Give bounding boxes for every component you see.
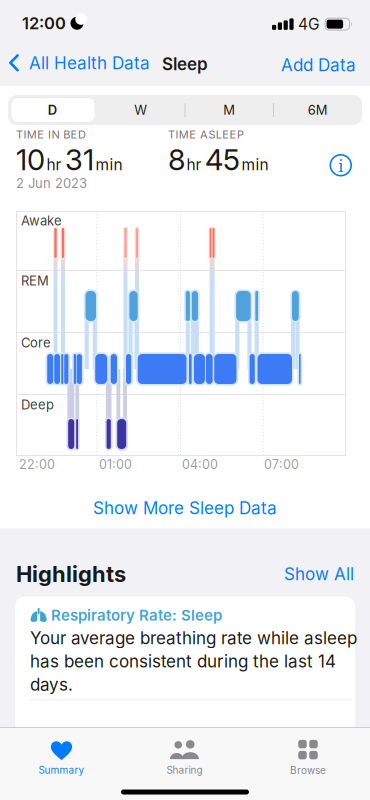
- staticText: All Health Data: [29, 53, 150, 73]
- staticText: min: [95, 155, 122, 174]
- staticText: Sharing: [166, 764, 202, 776]
- staticText: 04:00: [182, 457, 218, 472]
- staticText: 01:00: [99, 457, 132, 472]
- button[interactable]: Respiratory Rate: Sleep: [15, 596, 355, 736]
- staticText: TIME IN BED: [16, 128, 86, 141]
- button[interactable]: Sharing: [123, 734, 246, 782]
- staticText: 45: [205, 142, 240, 177]
- staticText: M: [223, 102, 235, 118]
- staticText: TIME ASLEEP: [168, 128, 244, 141]
- staticText: Highlights: [16, 561, 126, 587]
- button[interactable]: Info: [329, 154, 352, 176]
- staticText: has been consistent during the last 14: [30, 651, 336, 671]
- staticText: Your average breathing rate while asleep: [30, 628, 357, 648]
- staticText: Show All: [284, 564, 354, 584]
- staticText: W: [134, 102, 147, 118]
- staticText: Respiratory Rate: Sleep: [51, 606, 222, 624]
- button[interactable]: Show More Sleep Data: [0, 498, 370, 518]
- button[interactable]: D: [8, 95, 96, 125]
- staticText: days.: [30, 674, 73, 695]
- staticText: Core: [21, 335, 51, 350]
- staticText: D: [48, 102, 57, 118]
- staticText: Add Data: [281, 55, 356, 75]
- staticText: 31: [65, 142, 94, 177]
- button[interactable]: Browse: [246, 734, 370, 782]
- staticText: Browse: [290, 764, 326, 776]
- staticText: 10: [16, 142, 45, 177]
- button[interactable]: W: [96, 95, 185, 125]
- button[interactable]: Add Data: [281, 55, 370, 75]
- staticText: REM: [21, 273, 49, 288]
- button[interactable]: All Health Data: [0, 53, 150, 73]
- staticText: Deep: [21, 397, 54, 412]
- staticText: Sleep: [162, 54, 208, 74]
- button[interactable]: Summary: [0, 734, 123, 782]
- staticText: Show More Sleep Data: [93, 498, 277, 518]
- staticText: hr: [186, 155, 201, 174]
- button[interactable]: 6M: [273, 95, 362, 125]
- staticText: 6M: [308, 102, 328, 118]
- staticText: Awake: [21, 213, 62, 228]
- staticText: 4G: [298, 15, 320, 33]
- button[interactable]: Show All: [284, 564, 354, 584]
- staticText: Summary: [38, 764, 84, 776]
- staticText: 07:00: [264, 457, 299, 472]
- staticText: i: [338, 155, 343, 177]
- staticText: hr: [46, 155, 61, 174]
- staticText: 8: [168, 142, 185, 177]
- staticText: min: [241, 155, 268, 174]
- staticText: 22:00: [19, 457, 55, 472]
- button[interactable]: M: [185, 95, 273, 125]
- staticText: 2 Jun 2023: [16, 175, 87, 191]
- staticText: 12:00: [22, 13, 66, 33]
